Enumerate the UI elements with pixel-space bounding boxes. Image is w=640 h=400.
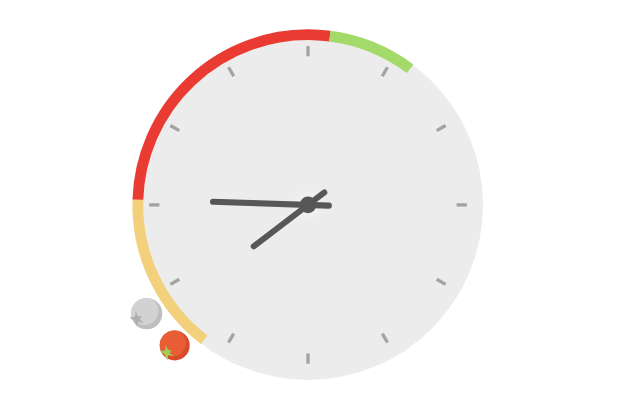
button[interactable]: Completed pomodoro: [131, 298, 163, 330]
button[interactable]: Current pomodoro: [159, 330, 190, 361]
button[interactable]: Pomodoro timer clock: [133, 30, 483, 380]
